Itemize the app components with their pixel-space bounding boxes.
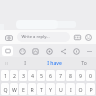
button[interactable]: U xyxy=(56,83,65,95)
button[interactable]: Q xyxy=(1,83,9,95)
staticText: 2 xyxy=(13,72,16,79)
button[interactable]: More xyxy=(71,46,81,56)
button[interactable]: Overflow xyxy=(85,46,94,56)
staticText: I xyxy=(70,86,72,93)
button[interactable]: W xyxy=(10,83,18,95)
button[interactable]: 9 xyxy=(76,70,85,81)
staticText: O xyxy=(78,86,83,93)
staticText: 0 xyxy=(89,72,92,79)
button[interactable]: GIF xyxy=(73,33,82,42)
staticText: Write a reply... xyxy=(21,34,50,40)
button[interactable]: 0 xyxy=(86,70,95,81)
button[interactable]: 1 xyxy=(1,70,9,81)
button[interactable]: 3 xyxy=(19,70,27,81)
button[interactable]: Expand suggestions xyxy=(0,57,12,69)
staticText: 7 xyxy=(59,72,62,79)
staticText: R xyxy=(30,86,34,93)
button[interactable]: I have xyxy=(38,57,71,69)
staticText: W xyxy=(12,86,17,93)
staticText: 9 xyxy=(79,72,82,79)
button[interactable]: Share xyxy=(58,46,68,56)
button[interactable]: 2 xyxy=(10,70,18,81)
button[interactable]: I xyxy=(66,83,75,95)
button[interactable]: 8 xyxy=(66,70,75,81)
staticText: I have xyxy=(47,60,62,67)
staticText: 1 xyxy=(4,72,7,79)
button[interactable]: To xyxy=(71,57,96,69)
button[interactable]: Location xyxy=(44,46,54,56)
staticText: T xyxy=(40,86,43,93)
button[interactable]: I xyxy=(12,57,38,69)
button[interactable]: E xyxy=(19,83,27,95)
button[interactable]: 6 xyxy=(46,70,55,81)
button[interactable]: Keyboard xyxy=(2,46,13,56)
staticText: 3 xyxy=(22,72,25,79)
staticText: 5 xyxy=(40,72,43,79)
button[interactable]: P xyxy=(86,83,95,95)
staticText: To xyxy=(81,60,87,67)
staticText: Y xyxy=(49,86,52,93)
button[interactable]: Emoji xyxy=(84,33,93,42)
button[interactable]: T xyxy=(37,83,45,95)
button[interactable]: O xyxy=(76,83,85,95)
button[interactable]: Camera xyxy=(3,32,14,43)
staticText: 8 xyxy=(69,72,72,79)
button[interactable]: Gallery xyxy=(30,46,40,56)
staticText: P xyxy=(89,86,93,93)
button[interactable]: Stickers xyxy=(17,46,27,56)
staticText: U xyxy=(59,86,63,93)
button[interactable]: Write a reply... xyxy=(17,32,70,42)
button[interactable]: 7 xyxy=(56,70,65,81)
button[interactable]: R xyxy=(28,83,36,95)
button[interactable]: 5 xyxy=(37,70,45,81)
staticText: 4 xyxy=(31,72,34,79)
staticText: Q xyxy=(3,86,8,93)
button[interactable]: Y xyxy=(46,83,55,95)
staticText: I xyxy=(24,60,26,67)
button[interactable]: 4 xyxy=(28,70,36,81)
staticText: E xyxy=(22,86,25,93)
staticText: 6 xyxy=(49,72,52,79)
